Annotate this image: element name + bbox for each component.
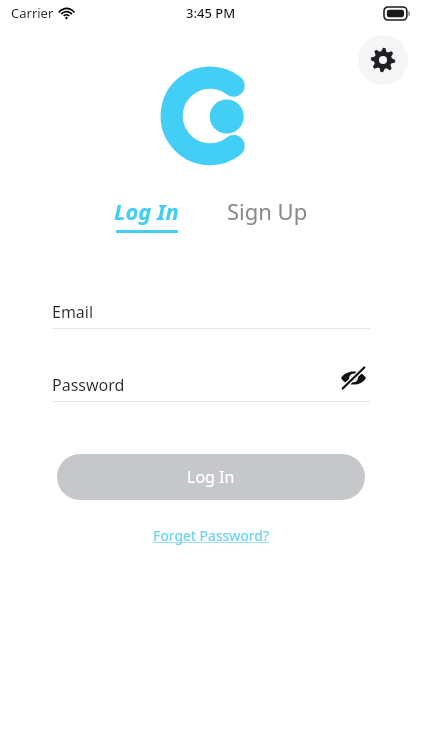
button[interactable]: Log In [57, 454, 365, 500]
staticText: Log In [114, 196, 179, 226]
staticText: Log In [187, 466, 235, 488]
button[interactable]: Sign Up [223, 196, 312, 226]
button[interactable]: Settings [358, 35, 408, 85]
staticText: Email [52, 301, 94, 323]
button[interactable]: Password [52, 369, 370, 401]
staticText: Sign Up [227, 196, 308, 226]
button[interactable]: Show password [336, 362, 370, 394]
button[interactable]: Email [52, 296, 370, 328]
staticText: Forget Password? [153, 526, 269, 545]
staticText: Carrier [11, 4, 54, 22]
staticText: 3:45 PM [186, 4, 236, 22]
button[interactable]: Log In [110, 196, 183, 233]
button[interactable]: Forget Password? [147, 520, 275, 551]
staticText: Password [52, 374, 125, 396]
